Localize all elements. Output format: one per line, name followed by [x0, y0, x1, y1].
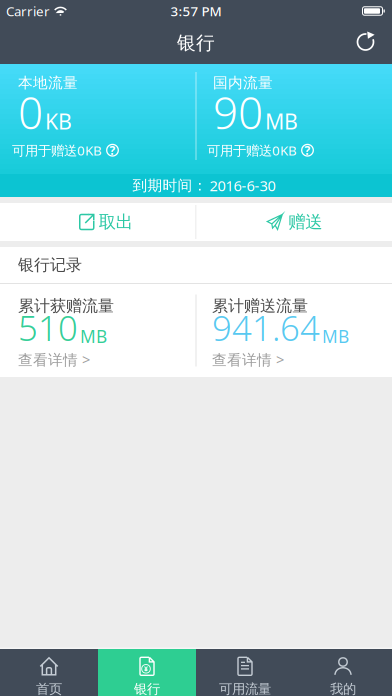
button[interactable]: 说明 [106, 144, 119, 157]
staticText: 银行记录 [18, 255, 82, 275]
staticText: 90 [213, 83, 263, 141]
staticText: 银行 [177, 31, 215, 54]
staticText: MB [322, 325, 349, 348]
staticText: MB [265, 107, 298, 135]
button[interactable]: 刷新 [356, 33, 392, 52]
button[interactable]: 取出 [0, 203, 195, 241]
staticText: MB [80, 325, 107, 348]
staticText: 累计获赠流量 [18, 296, 114, 316]
staticText: 941.64 [212, 305, 320, 351]
staticText: ? [109, 142, 115, 158]
staticText: 510 [18, 305, 78, 351]
staticText: 本地流量 [18, 74, 78, 92]
staticText: 累计赠送流量 [212, 296, 308, 316]
button[interactable]: 赠送 [196, 203, 392, 241]
staticText: KB [45, 107, 72, 135]
staticText: 可用于赠送0KB [12, 141, 102, 159]
staticText: 取出 [99, 211, 133, 233]
button[interactable]: 可用流量 [196, 649, 294, 696]
staticText: 查看详情 > [18, 350, 90, 369]
staticText: ? [304, 142, 310, 158]
button[interactable]: 我的 [294, 649, 392, 696]
staticText: 可用流量 [219, 681, 271, 696]
button[interactable]: 查看详情 > [212, 350, 284, 369]
button[interactable]: 说明 [301, 144, 314, 157]
staticText: 0 [18, 83, 43, 141]
staticText: 我的 [330, 681, 356, 696]
staticText: 首页 [36, 681, 62, 696]
staticText: 3:57 PM [170, 2, 221, 20]
staticText: 到期时间： [132, 176, 207, 194]
staticText: 银行 [134, 681, 160, 696]
staticText: 赠送 [288, 211, 322, 233]
staticText: 可用于赠送0KB [207, 141, 297, 159]
button[interactable]: 首页 [0, 649, 98, 696]
staticText: 国内流量 [213, 74, 273, 92]
button[interactable]: 查看详情 > [18, 350, 90, 369]
staticText: Carrier [6, 2, 50, 20]
staticText: 2016-6-30 [209, 176, 275, 195]
button[interactable]: 银行 [98, 649, 196, 696]
staticText: 查看详情 > [212, 350, 284, 369]
